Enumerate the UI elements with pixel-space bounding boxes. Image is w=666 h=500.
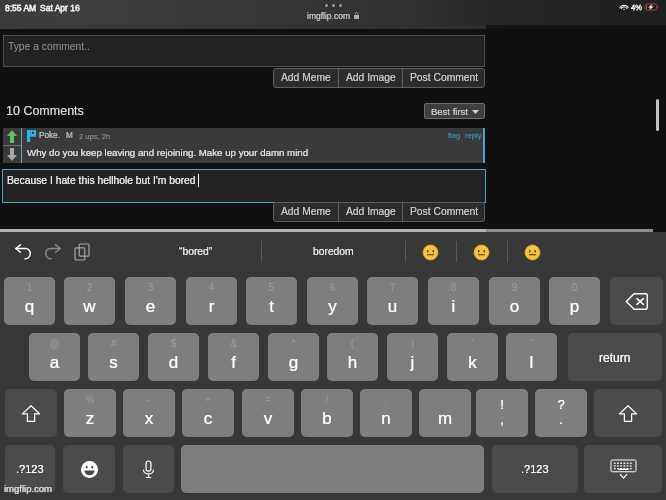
- button[interactable]: (: [327, 333, 378, 381]
- button[interactable]: Emoji suggestion: [405, 234, 456, 270]
- button[interactable]: :: [419, 389, 471, 437]
- button[interactable]: 5: [246, 277, 297, 325]
- staticText: 3: [125, 282, 176, 293]
- staticText: q: [4, 297, 55, 316]
- staticText: ,: [476, 412, 528, 427]
- button[interactable]: %: [64, 389, 116, 437]
- button[interactable]: ;: [360, 389, 412, 437]
- button[interactable]: Upvote: [3, 128, 21, 145]
- staticText: Add Meme: [281, 206, 331, 218]
- button[interactable]: Emoji suggestion: [456, 234, 507, 270]
- button[interactable]: 7: [367, 277, 418, 325]
- button[interactable]: “bored”: [131, 234, 260, 270]
- button[interactable]: +: [182, 389, 234, 437]
- staticText: 2 ups, 2h: [79, 132, 111, 140]
- button[interactable]: flag: [448, 131, 461, 139]
- staticText: 9: [489, 282, 540, 293]
- button[interactable]: Shift: [594, 389, 662, 437]
- button[interactable]: boredom: [261, 234, 405, 270]
- staticText: return: [599, 351, 631, 364]
- staticText: M: [66, 131, 73, 140]
- button[interactable]: Backspace: [610, 277, 663, 325]
- button[interactable]: 6: [307, 277, 358, 325]
- button[interactable]: Poke.: [39, 131, 111, 140]
- button[interactable]: /: [301, 389, 353, 437]
- button[interactable]: Emoji keyboard: [63, 445, 115, 493]
- staticText: l: [506, 353, 557, 372]
- staticText: &: [208, 338, 259, 349]
- button[interactable]: Hide keyboard: [584, 445, 662, 493]
- button[interactable]: 8: [428, 277, 479, 325]
- button[interactable]: 4: [186, 277, 237, 325]
- staticText: “bored”: [179, 246, 213, 258]
- staticText: 6: [307, 282, 358, 293]
- staticText: =: [242, 394, 294, 405]
- staticText: g: [268, 353, 319, 372]
- button[interactable]: #: [88, 333, 139, 381]
- button[interactable]: Shift: [5, 389, 57, 437]
- button[interactable]: Add Image: [339, 68, 402, 88]
- button[interactable]: .?123: [5, 445, 55, 493]
- staticText: 8:55 AM: [5, 3, 37, 12]
- button[interactable]: imgflip.com: [0, 11, 666, 20]
- staticText: 8: [428, 282, 479, 293]
- button[interactable]: !: [476, 389, 528, 437]
- button[interactable]: *: [268, 333, 319, 381]
- button[interactable]: =: [242, 389, 294, 437]
- staticText: u: [367, 297, 418, 316]
- button[interactable]: -: [123, 389, 175, 437]
- staticText: .?123: [521, 463, 549, 475]
- button[interactable]: $: [148, 333, 199, 381]
- staticText: @: [29, 338, 80, 349]
- button[interactable]: ": [506, 333, 557, 381]
- button[interactable]: 9: [489, 277, 540, 325]
- staticText: Type a comment..: [8, 41, 90, 53]
- button[interactable]: Post Comment: [403, 202, 485, 222]
- staticText: h: [327, 353, 378, 372]
- staticText: Sat Apr 16: [40, 3, 80, 12]
- button[interactable]: Add Meme: [273, 202, 338, 222]
- button[interactable]: reply: [465, 131, 482, 139]
- button[interactable]: Post Comment: [403, 68, 485, 88]
- staticText: .: [535, 412, 587, 427]
- button[interactable]: ): [387, 333, 438, 381]
- button[interactable]: Best first: [424, 103, 485, 119]
- button[interactable]: return: [568, 333, 662, 381]
- button[interactable]: Add Meme: [273, 68, 338, 88]
- button[interactable]: 2: [64, 277, 115, 325]
- button[interactable]: ‘: [447, 333, 498, 381]
- staticText: t: [246, 297, 297, 316]
- staticText: imgflip.com: [307, 11, 350, 20]
- button[interactable]: @: [29, 333, 80, 381]
- staticText: !: [476, 397, 528, 412]
- button[interactable]: Redo: [42, 241, 63, 262]
- staticText: Add Image: [346, 206, 396, 218]
- button[interactable]: Dictate: [123, 445, 174, 493]
- button[interactable]: ?: [535, 389, 587, 437]
- staticText: b: [301, 409, 353, 428]
- staticText: 0: [549, 282, 600, 293]
- button[interactable]: &: [208, 333, 259, 381]
- button[interactable]: Emoji suggestion: [507, 234, 558, 270]
- button[interactable]: Paste: [71, 241, 92, 262]
- button[interactable]: .?123: [492, 445, 578, 493]
- button[interactable]: 1: [4, 277, 55, 325]
- button[interactable]: Undo: [13, 241, 34, 262]
- staticText: imgflip.com: [4, 483, 53, 494]
- button[interactable]: Add Image: [339, 202, 402, 222]
- staticText: c: [182, 409, 234, 428]
- button[interactable]: 3: [125, 277, 176, 325]
- button[interactable]: Downvote: [3, 146, 21, 163]
- staticText: f: [208, 353, 259, 372]
- staticText: 5: [246, 282, 297, 293]
- button[interactable]: 0: [549, 277, 600, 325]
- staticText: ?: [535, 397, 587, 412]
- staticText: boredom: [313, 246, 354, 258]
